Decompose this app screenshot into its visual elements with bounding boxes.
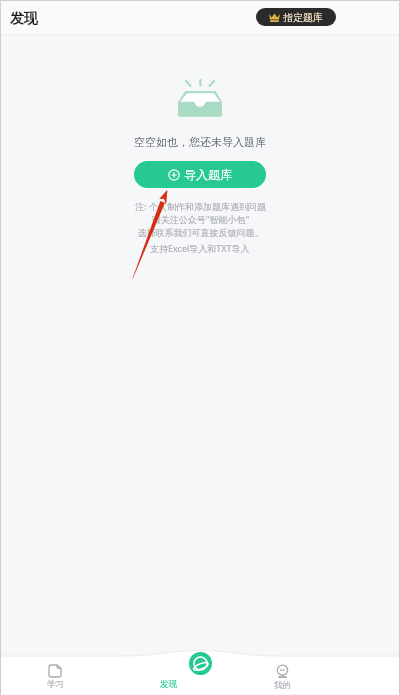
button[interactable]: 发现 <box>189 652 212 675</box>
staticText: 我的 <box>274 680 291 691</box>
button[interactable]: 发现 <box>144 663 192 695</box>
button[interactable]: 我的 <box>258 663 306 695</box>
staticText: 发现 <box>160 679 177 690</box>
staticText: 支持Excel导入和TXT导入 <box>150 242 250 254</box>
staticText: 空空如也，您还未导入题库 <box>134 135 266 149</box>
button[interactable]: 导入题库 <box>134 161 266 188</box>
button[interactable]: 学习 <box>31 663 79 695</box>
button[interactable]: 指定题库 <box>256 8 336 26</box>
staticText: 指定题库 <box>283 11 323 24</box>
staticText: 发现 <box>10 10 38 28</box>
staticText: 导入题库 <box>184 167 232 182</box>
staticText: 学习 <box>47 679 64 690</box>
staticText: 注: 个人制作和添加题库遇到问题 请关注公众号"智能小包" 选择联系我们可直接反… <box>135 200 266 238</box>
